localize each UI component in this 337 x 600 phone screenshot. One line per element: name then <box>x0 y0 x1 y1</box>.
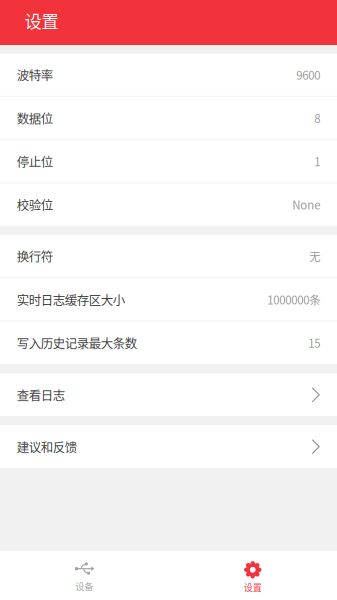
staticText: 无 <box>309 248 320 264</box>
button[interactable]: 写入历史记录最大条数 <box>0 322 337 364</box>
staticText: 波特率 <box>17 66 53 84</box>
staticText: 设备 <box>75 579 93 592</box>
button[interactable]: 建议和反馈 <box>0 425 337 468</box>
staticText: 设置 <box>244 581 262 594</box>
button[interactable]: 数据位 <box>0 97 337 139</box>
button[interactable]: 停止位 <box>0 140 337 182</box>
staticText: 查看日志 <box>17 386 65 404</box>
button[interactable]: 设置 <box>168 551 337 600</box>
staticText: 实时日志缓存区大小 <box>17 290 125 308</box>
button[interactable]: 换行符 <box>0 235 337 277</box>
button[interactable]: 查看日志 <box>0 373 337 416</box>
button[interactable]: 波特率 <box>0 54 337 96</box>
staticText: 设置 <box>24 8 58 33</box>
staticText: 1 <box>314 153 320 170</box>
button[interactable]: 校验位 <box>0 183 337 226</box>
staticText: 校验位 <box>17 196 53 214</box>
staticText: 停止位 <box>17 152 53 170</box>
button[interactable]: 设备 <box>0 551 168 600</box>
staticText: None <box>292 196 320 213</box>
staticText: 8 <box>314 110 320 126</box>
button[interactable]: 实时日志缓存区大小 <box>0 278 337 321</box>
staticText: 写入历史记录最大条数 <box>17 334 137 352</box>
staticText: 换行符 <box>17 247 53 265</box>
staticText: 建议和反馈 <box>17 438 77 456</box>
staticText: 1000000条 <box>267 291 320 308</box>
staticText: 数据位 <box>17 109 53 127</box>
staticText: 15 <box>308 334 320 351</box>
staticText: 9600 <box>296 66 320 83</box>
